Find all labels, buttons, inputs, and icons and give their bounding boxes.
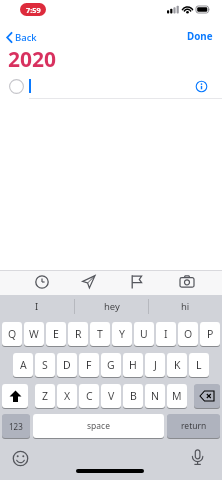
button[interactable]: R <box>68 322 88 346</box>
staticText: Z <box>42 389 49 403</box>
button[interactable]: A <box>13 353 33 377</box>
staticText: O <box>184 327 193 341</box>
staticText: 7:59 <box>26 5 41 15</box>
staticText: D <box>63 358 71 372</box>
staticText: H <box>129 358 137 372</box>
button[interactable] <box>2 384 28 408</box>
button[interactable]: Back <box>6 30 37 44</box>
staticText: Back <box>15 31 37 44</box>
button[interactable]: C <box>79 384 99 408</box>
button[interactable]: Q <box>2 322 22 346</box>
button[interactable]: I <box>156 322 176 346</box>
staticText: N <box>151 389 159 403</box>
staticText: B <box>130 389 137 403</box>
staticText: M <box>172 389 182 403</box>
button[interactable]: hi <box>149 295 222 318</box>
button[interactable]: F <box>79 353 99 377</box>
button[interactable]: space <box>33 414 164 438</box>
staticText: G <box>107 358 115 372</box>
staticText: Done <box>187 30 213 43</box>
button[interactable]: P <box>200 322 220 346</box>
button[interactable]: 123 <box>2 414 30 438</box>
button[interactable]: T <box>90 322 110 346</box>
staticText: V <box>108 389 115 403</box>
button[interactable] <box>190 449 205 466</box>
staticText: L <box>196 358 202 372</box>
button[interactable] <box>179 274 195 290</box>
button[interactable]: B <box>123 384 143 408</box>
staticText: C <box>86 389 93 403</box>
button[interactable]: O <box>178 322 198 346</box>
button[interactable]: J <box>145 353 165 377</box>
staticText: return <box>181 420 207 432</box>
button[interactable]: return <box>167 414 220 438</box>
button[interactable] <box>194 384 220 408</box>
staticText: R <box>75 327 82 341</box>
button[interactable]: S <box>35 353 55 377</box>
button[interactable]: Done <box>187 30 213 43</box>
button[interactable]: 7:59 <box>20 3 46 16</box>
button[interactable]: D <box>57 353 77 377</box>
button[interactable]: E <box>46 322 66 346</box>
staticText: J <box>154 358 157 372</box>
staticText: Y <box>119 327 125 341</box>
button[interactable]: G <box>101 353 121 377</box>
staticText: S <box>42 358 48 372</box>
button[interactable]: Z <box>35 384 55 408</box>
button[interactable]: M <box>167 384 187 408</box>
button[interactable] <box>194 79 209 94</box>
staticText: X <box>64 389 71 403</box>
button[interactable]: X <box>57 384 77 408</box>
staticText: K <box>174 358 181 372</box>
staticText: A <box>20 358 27 372</box>
staticText: F <box>86 358 92 372</box>
staticText: W <box>29 327 39 341</box>
staticText: E <box>53 327 59 341</box>
staticText: I <box>35 300 39 313</box>
staticText: T <box>97 327 103 341</box>
staticText: I <box>164 327 168 341</box>
button[interactable] <box>12 450 29 467</box>
button[interactable]: L <box>189 353 209 377</box>
button[interactable] <box>34 274 50 290</box>
staticText: hi <box>181 300 190 313</box>
staticText: 2020 <box>8 45 57 74</box>
button[interactable]: U <box>134 322 154 346</box>
button[interactable]: hey <box>75 295 148 318</box>
staticText: hey <box>104 300 120 313</box>
staticText: U <box>140 327 148 341</box>
button[interactable]: K <box>167 353 187 377</box>
button[interactable] <box>81 274 97 290</box>
button[interactable]: H <box>123 353 143 377</box>
staticText: 123 <box>9 421 23 432</box>
button[interactable]: W <box>24 322 44 346</box>
button[interactable]: I <box>0 295 74 318</box>
button[interactable]: V <box>101 384 121 408</box>
button[interactable] <box>129 274 145 290</box>
button[interactable]: Y <box>112 322 132 346</box>
staticText: space <box>87 420 110 432</box>
staticText: P <box>207 327 214 341</box>
button[interactable]: N <box>145 384 165 408</box>
staticText: Q <box>8 327 17 341</box>
